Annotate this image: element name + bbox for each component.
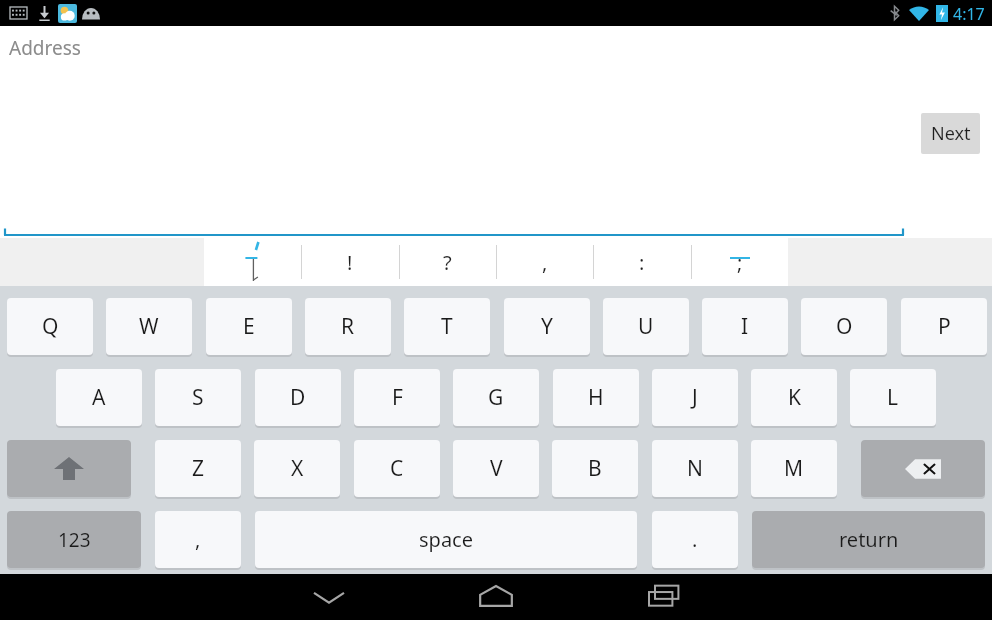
staticText: Next — [931, 121, 971, 146]
button[interactable]: ? — [399, 238, 496, 286]
button[interactable]: J — [652, 369, 738, 426]
button[interactable]: Hide keyboard — [305, 582, 353, 612]
staticText: ? — [443, 249, 452, 276]
staticText: . — [692, 526, 698, 553]
staticText: Address — [9, 35, 81, 61]
button[interactable]: Q — [7, 298, 93, 355]
button[interactable]: P — [901, 298, 987, 355]
staticText: : — [639, 249, 645, 276]
staticText: H — [588, 383, 604, 412]
staticText: ; — [737, 249, 743, 276]
button[interactable]: space — [255, 511, 637, 568]
button[interactable]: W — [106, 298, 192, 355]
button[interactable]: S — [155, 369, 241, 426]
button[interactable]: , — [155, 511, 241, 568]
button[interactable]: B — [552, 440, 638, 497]
staticText: M — [784, 454, 804, 483]
button[interactable]: Backspace — [861, 440, 985, 497]
button[interactable]: . — [652, 511, 738, 568]
button[interactable]: ! — [301, 238, 398, 286]
button[interactable]: , — [496, 238, 593, 286]
staticText: R — [341, 312, 355, 341]
button[interactable]: Z — [155, 440, 241, 497]
staticText: Y — [541, 312, 553, 341]
staticText: B — [588, 454, 602, 483]
button[interactable]: : — [593, 238, 690, 286]
button[interactable]: G — [453, 369, 539, 426]
button[interactable]: K — [751, 369, 837, 426]
staticText: 4:17 — [953, 3, 985, 25]
staticText: O — [836, 312, 853, 341]
staticText: , — [542, 249, 548, 276]
button[interactable]: A — [56, 369, 142, 426]
staticText: J — [692, 383, 698, 412]
button[interactable]: Next — [921, 113, 980, 154]
staticText: G — [488, 383, 504, 412]
button[interactable]: Recent apps — [640, 579, 688, 613]
staticText: K — [788, 383, 801, 412]
staticText: D — [290, 383, 306, 412]
staticText: return — [839, 526, 899, 553]
staticText: C — [390, 454, 404, 483]
button[interactable]: Y — [504, 298, 590, 355]
button[interactable]: N — [652, 440, 738, 497]
staticText: U — [638, 312, 654, 341]
staticText: S — [192, 383, 204, 412]
staticText: E — [243, 312, 255, 341]
staticText: 123 — [58, 527, 91, 553]
button[interactable]: U — [603, 298, 689, 355]
button[interactable] — [204, 238, 301, 286]
button[interactable]: T — [404, 298, 490, 355]
staticText: ! — [347, 249, 353, 276]
staticText: A — [92, 383, 106, 412]
staticText: T — [441, 312, 453, 341]
button[interactable]: Shift — [7, 440, 131, 497]
button[interactable]: return — [752, 511, 985, 568]
staticText: X — [291, 454, 304, 483]
button[interactable]: F — [354, 369, 440, 426]
button[interactable]: O — [801, 298, 887, 355]
staticText: I — [741, 312, 749, 341]
staticText: Q — [42, 312, 59, 341]
staticText: L — [887, 383, 899, 412]
button[interactable]: 123 — [7, 511, 141, 568]
button[interactable]: ; — [691, 238, 788, 286]
button[interactable]: I — [702, 298, 788, 355]
staticText: space — [419, 526, 473, 553]
staticText: N — [687, 454, 703, 483]
staticText: Z — [192, 454, 205, 483]
button[interactable]: C — [354, 440, 440, 497]
staticText: , — [195, 526, 201, 553]
button[interactable]: L — [850, 369, 936, 426]
button[interactable]: H — [553, 369, 639, 426]
button[interactable]: E — [206, 298, 292, 355]
button[interactable]: Home — [472, 579, 520, 613]
staticText: F — [392, 383, 403, 412]
button[interactable]: X — [254, 440, 340, 497]
button[interactable]: R — [305, 298, 391, 355]
button[interactable]: M — [751, 440, 837, 497]
button[interactable]: V — [453, 440, 539, 497]
staticText: P — [938, 312, 951, 341]
staticText: W — [139, 312, 159, 341]
button[interactable]: D — [255, 369, 341, 426]
staticText: V — [490, 454, 503, 483]
